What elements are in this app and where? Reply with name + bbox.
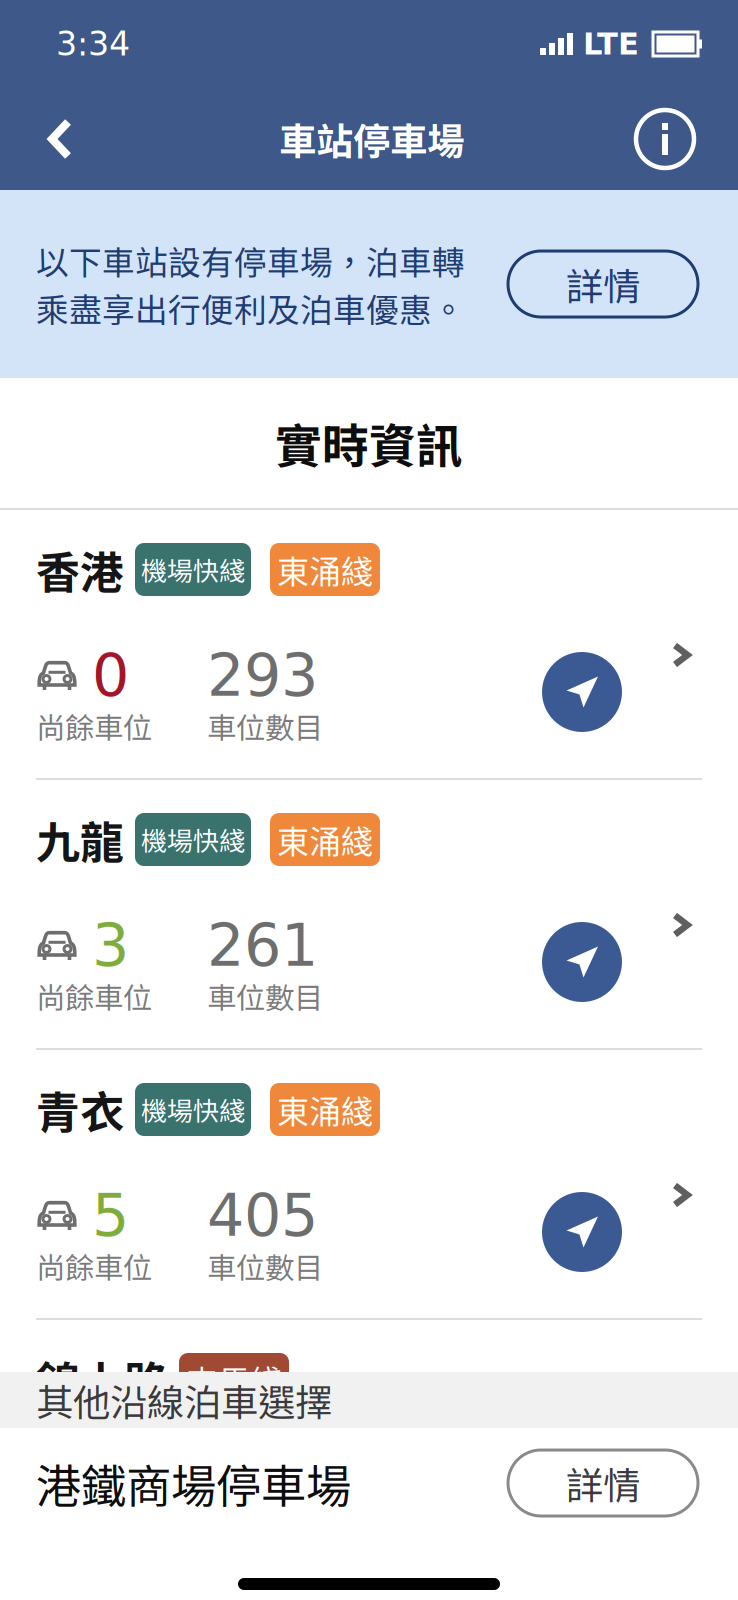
staticText: 尚餘車位 [36,975,152,1017]
staticText: 3 [92,911,129,980]
staticText: LTE [583,26,639,62]
staticText: 3:34 [56,25,130,63]
button[interactable]: 詳情 [508,251,698,317]
staticText: 機場快綫 [141,1091,245,1128]
staticText: 261 [207,911,318,980]
staticText: 九龍 [36,808,124,871]
staticText: 機場快綫 [141,551,245,588]
button[interactable]: 九龍 [0,780,738,1048]
staticText: 實時資訊 [275,409,463,477]
staticText: 東涌綫 [277,816,373,863]
staticText: 車位數目 [207,975,323,1017]
staticText: 青衣 [36,1078,124,1141]
button[interactable]: 港鐵商場停車場 [0,1428,738,1538]
staticText: 屯馬綫 [186,1356,282,1403]
staticText: 其他沿線泊車選擇 [36,1373,332,1427]
staticText: 香港 [36,538,124,601]
button[interactable]: 青衣 [0,1050,738,1318]
staticText: 詳情 [566,257,640,311]
staticText: 車站停車場 [279,112,464,166]
staticText: 尚餘車位 [36,705,152,747]
staticText: 405 [207,1181,318,1250]
button[interactable]: 香港 [0,510,738,778]
staticText: 東涌綫 [277,1086,373,1133]
staticText: 錦上路 [36,1348,168,1411]
staticText: 車位數目 [207,705,323,747]
staticText: 293 [207,641,318,710]
staticText: 東涌綫 [277,546,373,593]
button[interactable]: Back [47,99,127,179]
staticText: 以下車站設有停車場，泊車轉乘盡享出行便利及泊車優惠。 [36,237,465,331]
staticText: 車位數目 [207,1245,323,1287]
staticText: 詳情 [566,1456,640,1510]
staticText: 機場快綫 [141,821,245,858]
staticText: 0 [92,641,129,710]
staticText: 5 [92,1181,129,1250]
staticText: 港鐵商場停車場 [36,1450,351,1516]
button[interactable]: Information [616,99,696,179]
staticText: 尚餘車位 [36,1245,152,1287]
